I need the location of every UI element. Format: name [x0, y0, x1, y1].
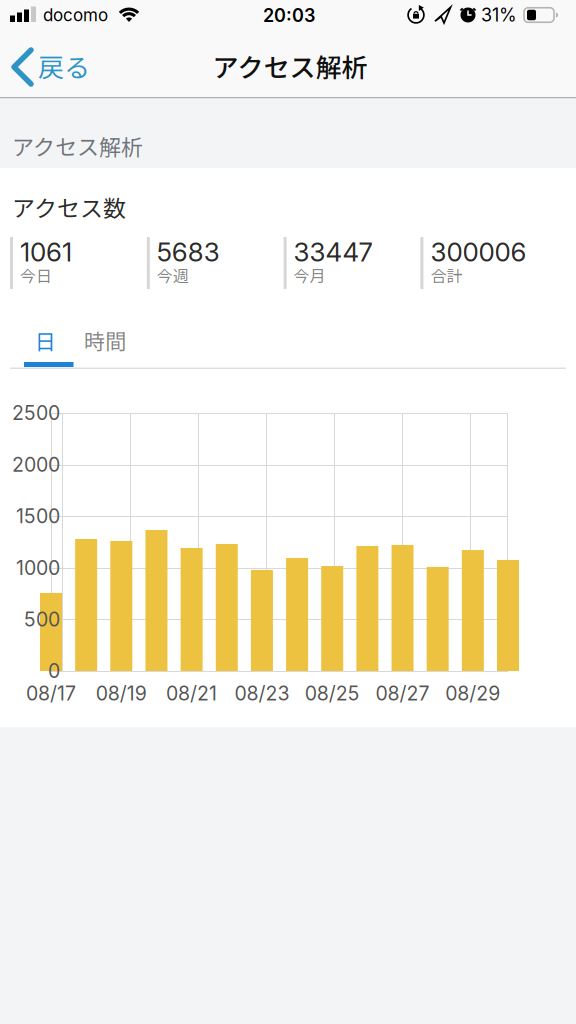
- staticText: 今月: [294, 263, 326, 287]
- staticText: 08/23: [234, 682, 289, 705]
- staticText: 300006: [430, 236, 526, 268]
- staticText: アクセス解析: [12, 130, 143, 162]
- staticText: 合計: [430, 263, 462, 287]
- staticText: 500: [24, 608, 60, 631]
- staticText: 1500: [16, 504, 60, 528]
- staticText: 08/19: [96, 682, 147, 705]
- staticText: 今日: [20, 263, 52, 287]
- staticText: 1000: [16, 556, 60, 580]
- staticText: 08/17: [26, 682, 76, 705]
- button[interactable]: 日: [12, 322, 78, 358]
- staticText: 33447: [294, 236, 373, 268]
- staticText: 31%: [481, 4, 517, 26]
- button[interactable]: 時間: [72, 322, 138, 358]
- staticText: アクセス解析: [212, 47, 367, 85]
- staticText: 0: [48, 659, 60, 683]
- staticText: 2000: [12, 453, 60, 476]
- staticText: 5683: [157, 236, 220, 268]
- staticText: 2500: [12, 401, 60, 425]
- staticText: 日: [34, 325, 55, 355]
- staticText: 08/29: [445, 682, 500, 705]
- staticText: 1061: [20, 236, 72, 268]
- staticText: アクセス数: [12, 190, 126, 224]
- button[interactable]: 戻る: [0, 31, 120, 97]
- staticText: docomo: [43, 5, 108, 25]
- staticText: 20:03: [263, 5, 315, 26]
- staticText: 今週: [157, 263, 189, 287]
- staticText: 08/27: [375, 682, 429, 705]
- staticText: 戻る: [38, 47, 90, 85]
- staticText: 08/21: [166, 682, 217, 705]
- staticText: 08/25: [305, 682, 360, 705]
- staticText: 時間: [84, 325, 126, 355]
